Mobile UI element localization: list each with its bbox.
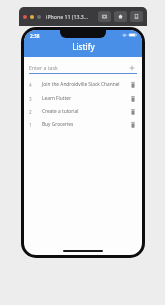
button[interactable]: Home: [114, 11, 127, 22]
staticText: Learn Flutter: [42, 95, 124, 102]
button[interactable]: [37, 15, 41, 19]
staticText: Enter a task: [29, 64, 127, 71]
staticText: Join the Androidville Slack Channel: [42, 81, 124, 88]
staticText: Listify: [72, 41, 95, 52]
button[interactable]: 2: [24, 105, 142, 118]
staticText: 2:38: [30, 33, 40, 40]
staticText: 1: [29, 122, 38, 128]
button[interactable]: [30, 15, 34, 19]
button[interactable]: Enter a task: [29, 62, 137, 73]
button[interactable]: [23, 15, 27, 19]
staticText: 2: [29, 109, 38, 115]
staticText: 3: [29, 96, 38, 102]
button[interactable]: Delete Join the Androidville Slack Chann…: [128, 80, 137, 89]
staticText: Create a tutorial: [42, 108, 124, 115]
button[interactable]: Delete Learn Flutter: [128, 94, 137, 103]
button[interactable]: Add task: [127, 63, 137, 73]
staticText: Buy Groceries: [42, 121, 124, 128]
button[interactable]: 1: [24, 118, 142, 131]
staticText: 4: [29, 82, 38, 88]
button[interactable]: 4: [24, 77, 142, 92]
staticText: iPhone 11 (13.3…: [46, 13, 88, 20]
button[interactable]: Screenshot: [98, 11, 111, 22]
button[interactable]: 3: [24, 92, 142, 105]
button[interactable]: Delete Create a tutorial: [128, 107, 137, 116]
button[interactable]: Rotate: [130, 11, 143, 22]
button[interactable]: Delete Buy Groceries: [128, 120, 137, 129]
